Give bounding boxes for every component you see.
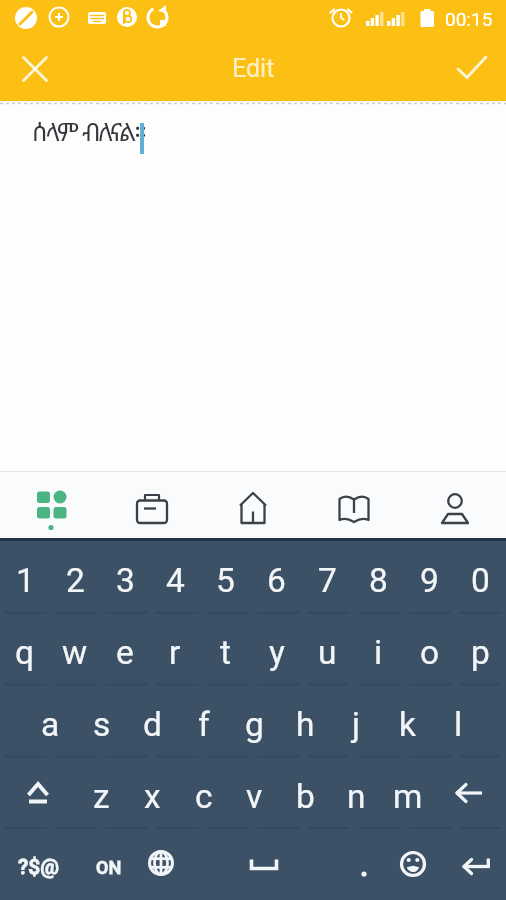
staticText: d [143, 705, 162, 744]
staticText: z [93, 777, 110, 816]
staticText: k [399, 705, 416, 744]
staticText: 6 [267, 561, 286, 600]
staticText: q [15, 633, 35, 672]
staticText: j [352, 705, 361, 744]
button[interactable]: 1 [0, 541, 50, 613]
staticText: Edit [232, 54, 275, 83]
staticText: ?$@ [18, 855, 59, 880]
staticText: u [318, 633, 337, 672]
staticText: l [454, 705, 463, 744]
staticText: r [169, 633, 181, 672]
staticText: g [245, 705, 264, 744]
staticText: t [220, 633, 231, 672]
staticText: i [374, 633, 383, 672]
button[interactable] [303, 472, 404, 538]
button[interactable]: d [127, 685, 178, 757]
button[interactable]: u [302, 613, 353, 685]
button[interactable]: r [150, 613, 200, 685]
button[interactable]: 0 [455, 541, 506, 613]
staticText: 7 [318, 561, 337, 600]
staticText: 1 [16, 561, 35, 600]
button[interactable] [0, 472, 101, 538]
button[interactable]: n [331, 757, 382, 829]
button[interactable]: 8 [353, 541, 404, 613]
button[interactable]: j [331, 685, 382, 757]
button[interactable] [13, 47, 57, 91]
button[interactable]: g [229, 685, 280, 757]
button[interactable]: f [178, 685, 229, 757]
button[interactable]: a [25, 685, 76, 757]
button[interactable]: e [100, 613, 150, 685]
button[interactable]: t [200, 613, 251, 685]
button[interactable]: o [404, 613, 455, 685]
button[interactable]: p [455, 613, 506, 685]
staticText: h [296, 705, 315, 744]
staticText: n [347, 777, 366, 816]
button[interactable]: s [76, 685, 127, 757]
staticText: f [198, 705, 210, 744]
button[interactable]: 2 [50, 541, 100, 613]
button[interactable] [433, 757, 506, 829]
button[interactable]: z [76, 757, 127, 829]
button[interactable]: x [127, 757, 178, 829]
button[interactable]: k [382, 685, 433, 757]
staticText: 9 [420, 561, 439, 600]
staticText: y [269, 633, 285, 672]
staticText: b [296, 777, 315, 816]
button[interactable]: q [0, 613, 50, 685]
button[interactable]: 5 [200, 541, 251, 613]
staticText: a [41, 705, 60, 744]
button[interactable] [142, 829, 190, 900]
staticText: 5 [216, 561, 235, 600]
button[interactable] [450, 47, 494, 91]
button[interactable]: 4 [150, 541, 200, 613]
button[interactable]: y [251, 613, 302, 685]
button[interactable] [404, 472, 505, 538]
staticText: 3 [116, 561, 135, 600]
staticText: 0 [471, 561, 490, 600]
button[interactable] [330, 829, 390, 900]
staticText: ሰላም ብለናል። [32, 114, 146, 148]
button[interactable] [445, 829, 506, 900]
button[interactable]: l [433, 685, 484, 757]
button[interactable] [390, 829, 445, 900]
button[interactable] [190, 829, 330, 900]
button[interactable]: ?$@ [0, 829, 76, 900]
button[interactable]: w [50, 613, 100, 685]
button[interactable]: v [229, 757, 280, 829]
button[interactable]: 7 [302, 541, 353, 613]
button[interactable] [0, 757, 76, 829]
staticText: w [62, 633, 88, 672]
button[interactable]: 3 [100, 541, 150, 613]
staticText: e [116, 633, 134, 672]
button[interactable]: 6 [251, 541, 302, 613]
staticText: 00:15 [445, 8, 493, 30]
button[interactable]: m [382, 757, 433, 829]
staticText: 4 [166, 561, 185, 600]
staticText: p [471, 633, 490, 672]
staticText: s [93, 705, 111, 744]
button[interactable] [101, 472, 202, 538]
button[interactable]: 9 [404, 541, 455, 613]
button[interactable]: b [280, 757, 331, 829]
staticText: v [246, 777, 263, 816]
button[interactable]: ON [76, 829, 142, 900]
staticText: c [195, 777, 213, 816]
button[interactable]: i [353, 613, 404, 685]
staticText: ON [96, 857, 122, 878]
button[interactable] [202, 472, 303, 538]
staticText: 8 [369, 561, 388, 600]
staticText: 2 [66, 561, 85, 600]
staticText: m [393, 777, 423, 816]
staticText: x [144, 777, 161, 816]
staticText: o [420, 633, 440, 672]
button[interactable]: h [280, 685, 331, 757]
button[interactable]: c [178, 757, 229, 829]
